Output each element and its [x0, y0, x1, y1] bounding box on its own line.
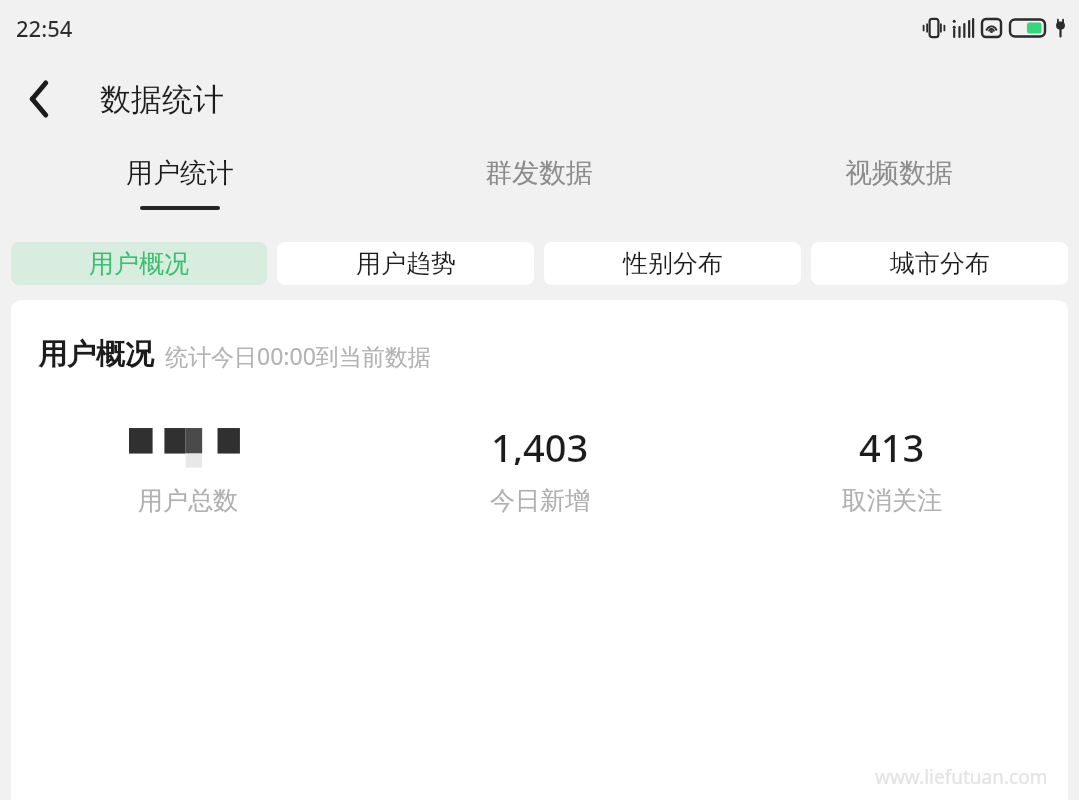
staticText: 群发数据: [485, 156, 593, 190]
button[interactable]: 城市分布: [811, 242, 1068, 285]
staticText: 用户概况: [38, 336, 154, 373]
staticText: 用户统计: [126, 156, 234, 190]
staticText: 统计今日00:00到当前数据: [165, 340, 431, 371]
button[interactable]: 用户统计: [0, 142, 359, 210]
staticText: 取消关注: [842, 485, 942, 516]
staticText: 1,403: [491, 421, 589, 465]
staticText: 性别分布: [623, 248, 723, 279]
staticText: 城市分布: [890, 248, 990, 279]
button[interactable]: Back: [6, 66, 72, 132]
staticText: 数据统计: [100, 80, 224, 119]
button[interactable]: 视频数据: [719, 142, 1079, 206]
staticText: 413: [859, 421, 925, 465]
button[interactable]: 用户概况: [11, 242, 267, 285]
staticText: 视频数据: [845, 156, 953, 190]
staticText: www.liefutuan.com: [875, 764, 1048, 790]
button[interactable]: 群发数据: [359, 142, 719, 206]
staticText: 22:54: [16, 13, 73, 43]
staticText: 今日新增: [490, 485, 590, 516]
staticText: 用户总数: [138, 485, 238, 516]
staticText: 用户趋势: [356, 248, 456, 279]
button[interactable]: 用户趋势: [277, 242, 534, 285]
staticText: 用户概况: [89, 248, 189, 279]
button[interactable]: 性别分布: [544, 242, 801, 285]
